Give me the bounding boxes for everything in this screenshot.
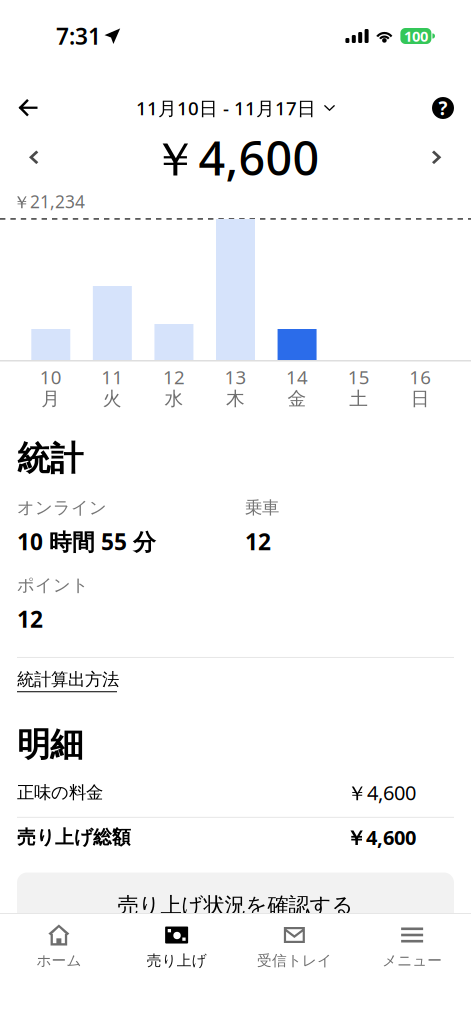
staticText: 売り上げ (147, 951, 207, 969)
staticText: ￥4,600 (346, 824, 416, 850)
button[interactable]: 受信トレイ (235, 923, 353, 983)
staticText: 14 (286, 364, 308, 389)
button[interactable]: Previous week (12, 135, 56, 179)
staticText: 火 (103, 387, 122, 410)
staticText: 正味の料金 (17, 782, 103, 803)
button[interactable]: Help (415, 86, 471, 130)
button[interactable]: ホーム (0, 923, 118, 983)
staticText: 12 (17, 604, 43, 634)
staticText: 統計算出方法 (17, 669, 119, 690)
staticText: 12 (245, 526, 271, 557)
staticText: 13 (224, 364, 246, 389)
staticText: 売り上げ総額 (17, 826, 131, 849)
staticText: 受信トレイ (257, 951, 332, 969)
staticText: 日 (411, 387, 430, 410)
button[interactable]: Next week (415, 135, 459, 179)
staticText: 11月10日 - 11月17日 (136, 96, 316, 120)
staticText: 10 時間 55 分 (17, 526, 156, 557)
staticText: 土 (349, 387, 368, 410)
staticText: 木 (226, 387, 245, 410)
staticText: ￥4,600 (347, 779, 416, 806)
button[interactable]: 売り上げ (118, 923, 236, 983)
staticText: ? (438, 96, 447, 120)
staticText: 12 (163, 364, 185, 389)
staticText: メニュー (382, 951, 442, 969)
staticText: 100 (404, 26, 428, 46)
staticText: 月 (41, 387, 60, 410)
button[interactable]: 売り上げ状況を確認する (17, 872, 454, 936)
staticText: 11 (101, 364, 123, 389)
button[interactable]: 統計算出方法 (17, 658, 119, 692)
staticText: 16 (409, 364, 431, 389)
staticText: 15 (348, 364, 370, 389)
staticText: 10 (40, 364, 62, 389)
staticText: 統計 (17, 438, 83, 479)
button[interactable]: 11月10日 - 11月17日 (128, 86, 343, 130)
staticText: ホーム (36, 951, 81, 969)
staticText: 水 (164, 387, 183, 410)
staticText: ポイント (17, 575, 89, 596)
staticText: 金 (288, 387, 307, 410)
staticText: オンライン (17, 497, 107, 518)
staticText: 明細 (17, 724, 83, 765)
button[interactable]: メニュー (353, 923, 471, 983)
staticText: ￥21,234 (13, 190, 85, 213)
staticText: 7:31 (56, 21, 101, 51)
button[interactable]: Back (0, 86, 56, 130)
staticText: 売り上げ状況を確認する (117, 892, 353, 919)
staticText: ￥4,600 (151, 126, 319, 189)
staticText: 乗車 (245, 497, 279, 518)
